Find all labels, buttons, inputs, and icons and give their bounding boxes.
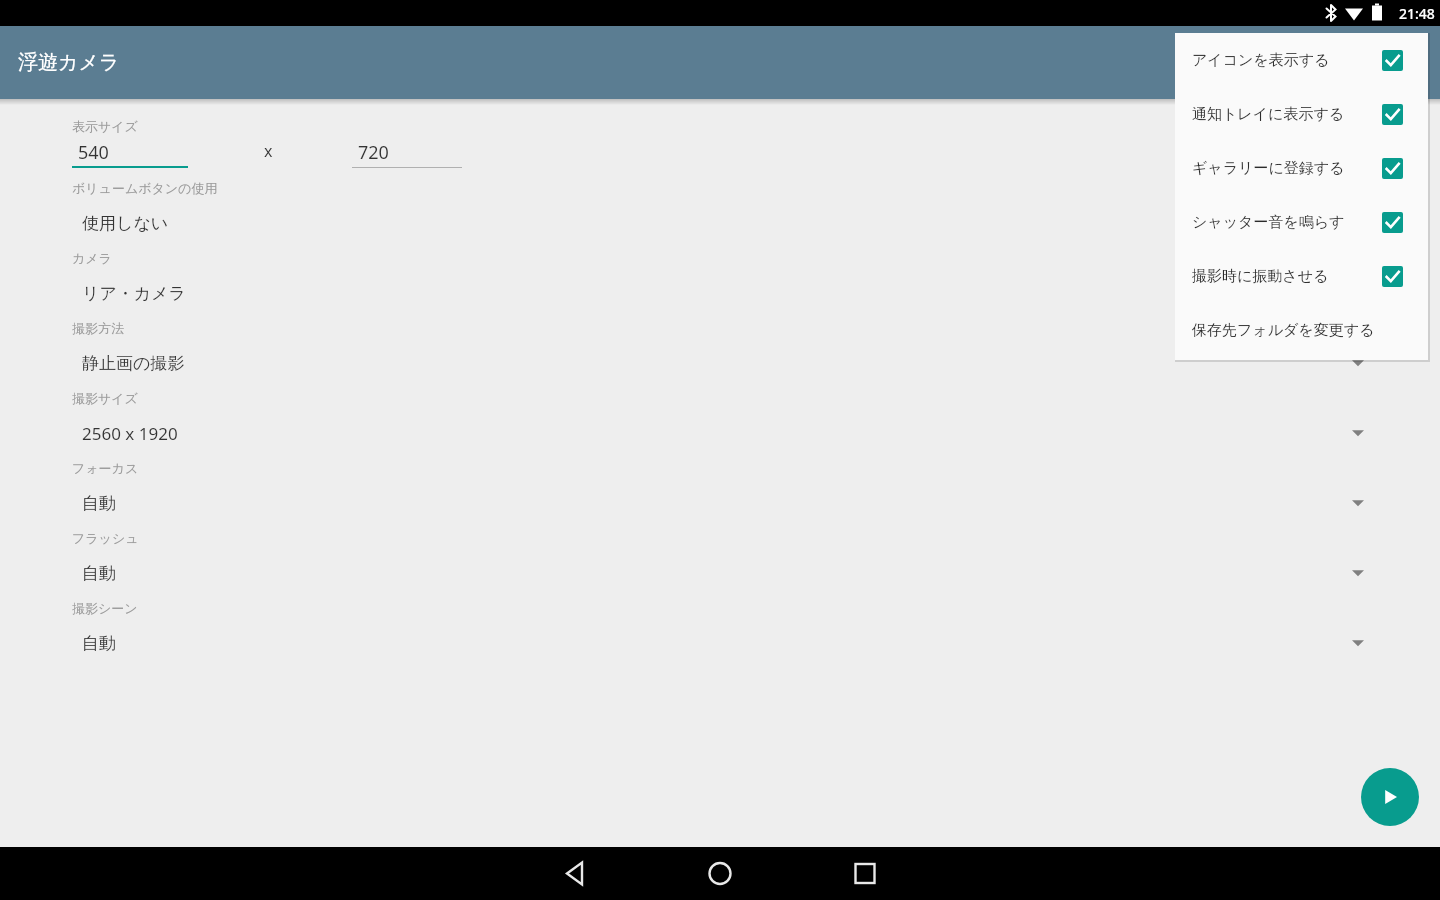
button[interactable]: 自動 bbox=[0, 616, 1440, 670]
staticText: 浮遊カメラ bbox=[18, 50, 120, 75]
staticText: 使用しない bbox=[82, 213, 169, 234]
staticText: 2560 x 1920 bbox=[82, 422, 178, 445]
staticText: 撮影時に振動させる bbox=[1192, 267, 1329, 286]
staticText: アイコンを表示する bbox=[1192, 51, 1330, 70]
staticText: 撮影方法 bbox=[72, 320, 124, 336]
staticText: ギャラリーに登録する bbox=[1192, 159, 1345, 178]
staticText: 自動 bbox=[82, 493, 116, 514]
button[interactable]: 保存先フォルダを変更する bbox=[1175, 303, 1428, 357]
button[interactable]: リア・カメラ bbox=[0, 266, 1440, 320]
staticText: 撮影サイズ bbox=[72, 390, 138, 406]
staticText: 540 bbox=[78, 140, 109, 165]
button[interactable]: 2560 x 1920 bbox=[0, 406, 1440, 460]
button[interactable]: シャッター音を鳴らす bbox=[1175, 195, 1428, 249]
button[interactable]: ギャラリーに登録する bbox=[1175, 141, 1428, 195]
button[interactable]: 静止画の撮影 bbox=[0, 336, 1440, 390]
staticText: シャッター音を鳴らす bbox=[1192, 213, 1345, 232]
staticText: 保存先フォルダを変更する bbox=[1192, 321, 1375, 340]
button[interactable]: 通知トレイに表示する bbox=[1175, 87, 1428, 141]
button[interactable]: 540 bbox=[72, 134, 188, 180]
staticText: ボリュームボタンの使用 bbox=[72, 180, 218, 196]
staticText: 静止画の撮影 bbox=[82, 353, 185, 374]
staticText: カメラ bbox=[72, 250, 112, 266]
button[interactable]: 自動 bbox=[0, 546, 1440, 600]
staticText: 自動 bbox=[82, 633, 116, 654]
button[interactable]: 使用しない bbox=[0, 196, 1440, 250]
button[interactable]: アイコンを表示する bbox=[1175, 33, 1428, 87]
staticText: フラッシュ bbox=[72, 530, 139, 546]
staticText: x bbox=[264, 140, 273, 162]
staticText: リア・カメラ bbox=[82, 283, 186, 304]
button[interactable]: Start bbox=[1361, 768, 1419, 826]
button[interactable]: 720 bbox=[352, 134, 462, 180]
button[interactable]: 自動 bbox=[0, 476, 1440, 530]
staticText: 撮影シーン bbox=[72, 600, 138, 616]
staticText: 21:48 bbox=[1399, 4, 1435, 23]
staticText: 表示サイズ bbox=[72, 118, 138, 134]
staticText: 自動 bbox=[82, 563, 116, 584]
staticText: フォーカス bbox=[72, 460, 139, 476]
button[interactable]: 撮影時に振動させる bbox=[1175, 249, 1428, 303]
staticText: 720 bbox=[358, 140, 389, 165]
staticText: 通知トレイに表示する bbox=[1192, 105, 1345, 124]
